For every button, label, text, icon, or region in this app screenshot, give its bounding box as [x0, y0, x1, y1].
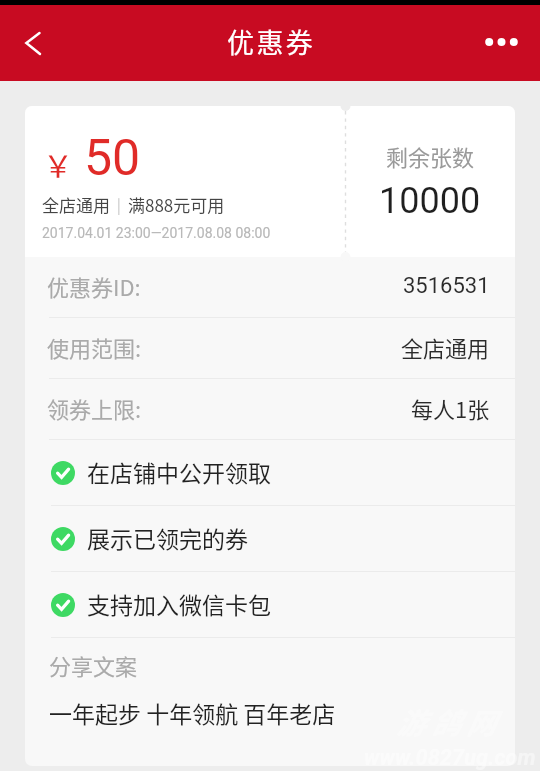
staticText: 3516531	[403, 273, 490, 299]
staticText: 满888元可用	[128, 192, 225, 217]
staticText: ￥	[43, 142, 73, 185]
staticText: 领券上限:	[47, 392, 142, 424]
staticText: 支持加入微信卡包	[87, 587, 271, 620]
staticText: 全店通用	[401, 331, 490, 363]
button[interactable]: More options	[478, 12, 540, 74]
button[interactable]: 支持加入微信卡包	[25, 572, 515, 638]
button[interactable]: 领券上限:	[25, 379, 515, 440]
button[interactable]: 优惠券ID:	[25, 257, 515, 318]
staticText: 全店通用	[42, 192, 110, 217]
staticText: 分享文案	[49, 649, 138, 681]
staticText: www.0827ug.com	[364, 745, 536, 770]
staticText: 一年起步 十年领航 百年老店	[49, 696, 336, 729]
staticText: 2017.04.01 23:00—2017.08.08 08:00	[42, 225, 271, 241]
staticText: 每人1张	[411, 392, 490, 424]
staticText: 优惠券	[227, 22, 316, 61]
staticText: 使用范围:	[47, 331, 142, 363]
staticText: 展示已领完的券	[87, 521, 248, 554]
button[interactable]: 使用范围:	[25, 318, 515, 379]
button[interactable]: 展示已领完的券	[25, 506, 515, 572]
staticText: 优惠券ID:	[47, 270, 141, 302]
staticText: |	[110, 194, 128, 216]
button[interactable]: 在店铺中公开领取	[25, 440, 515, 506]
staticText: 剩余张数	[386, 140, 475, 172]
staticText: 50	[84, 129, 141, 188]
staticText: 在店铺中公开领取	[87, 455, 271, 488]
staticText: 10000	[379, 180, 481, 222]
button[interactable]: Back	[0, 15, 56, 71]
